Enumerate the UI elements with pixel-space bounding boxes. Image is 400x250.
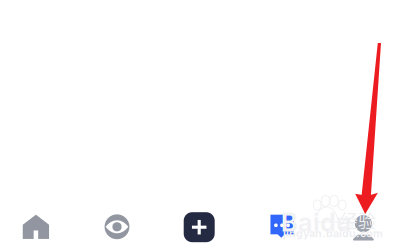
button[interactable]: Discover <box>86 202 148 250</box>
button[interactable]: Home <box>5 202 67 250</box>
button[interactable]: Create <box>168 202 230 250</box>
staticText: 经验 <box>340 207 376 233</box>
button[interactable]: Profile <box>332 203 394 250</box>
staticText: Baidu <box>281 207 352 238</box>
button[interactable]: Messages <box>251 201 313 250</box>
staticText: jingyan.baidu.com <box>283 227 383 240</box>
